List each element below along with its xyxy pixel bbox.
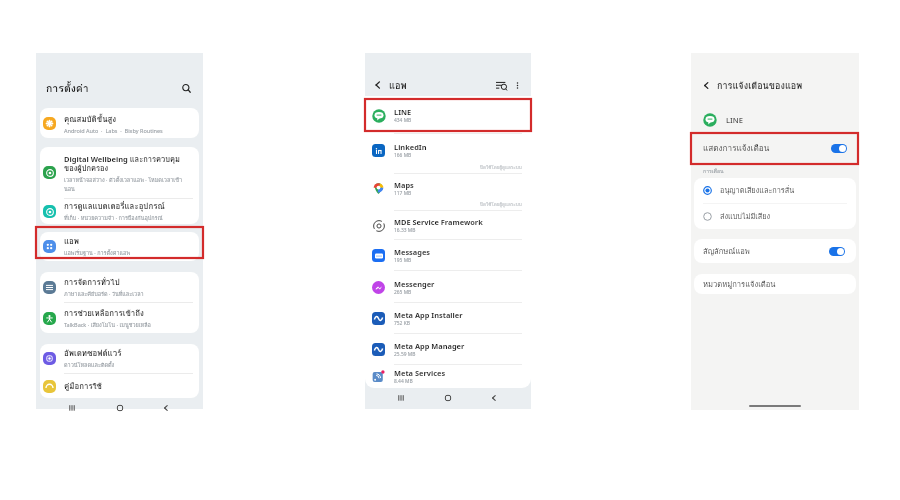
staticText: Digital Wellbeing และการควบคุมของผู้ปกคร…	[64, 153, 192, 175]
button[interactable]: Back	[701, 80, 712, 91]
staticText: LINE	[726, 115, 743, 125]
staticText: Android Auto · Labs · Bixby Routines	[64, 127, 163, 134]
staticText: 117 MB	[394, 190, 412, 197]
staticText: Meta App Manager	[394, 341, 465, 351]
staticText: Maps	[394, 180, 414, 190]
staticText: การจัดการทั่วไป	[64, 276, 120, 289]
staticText: คุณสมบัติขั้นสูง	[64, 113, 117, 126]
button[interactable]: หมวดหมู่การแจ้งเตือน	[694, 274, 856, 294]
button[interactable]: Back	[161, 403, 171, 413]
staticText: 8.44 MB	[394, 378, 413, 385]
staticText: ปิดใช้โดยผู้ดูแลระบบ	[480, 164, 522, 171]
button[interactable]: การจัดการทั่วไป	[40, 272, 199, 302]
staticText: 25.59 MB	[394, 351, 416, 358]
staticText: 16.33 MB	[394, 227, 416, 234]
staticText: แอพ	[389, 78, 407, 93]
button[interactable]: คู่มือการใช้	[40, 374, 199, 398]
staticText: การช่วยเหลือการเข้าถึง	[64, 307, 144, 320]
staticText: 166 MB	[394, 152, 412, 159]
button[interactable]: Meta App Installer	[365, 303, 531, 334]
staticText: สัญลักษณ์แอพ	[703, 245, 750, 257]
staticText: ดาวน์โหลดและติดตั้ง	[64, 361, 115, 370]
staticText: LinkedIn	[394, 142, 427, 152]
button[interactable]: การช่วยเหลือการเข้าถึง	[40, 303, 199, 333]
button[interactable]: Meta App Manager	[365, 334, 531, 365]
button[interactable]: Messages	[365, 240, 531, 271]
button[interactable]: Home	[115, 403, 125, 413]
button[interactable]: LinkedIn	[365, 134, 531, 174]
staticText: Messenger	[394, 279, 435, 289]
button[interactable]: Back	[372, 79, 384, 91]
staticText: Meta Services	[394, 368, 446, 378]
button[interactable]: Recents	[396, 393, 406, 403]
staticText: MDE Service Framework	[394, 217, 483, 227]
staticText: แอพ	[64, 235, 80, 248]
button[interactable]: Meta Services	[365, 365, 531, 388]
staticText: ส่งแบบไม่มีเสียง	[720, 211, 771, 223]
button[interactable]: Maps	[365, 174, 531, 211]
staticText: TalkBack · เสียงโมโน · เมนูช่วยเหลือ	[64, 321, 151, 330]
staticText: แอพเริ่มฐาน · การตั้งค่าแอพ	[64, 249, 131, 258]
button[interactable]: อัพเดทซอฟต์แวร์	[40, 344, 199, 373]
button[interactable]: คุณสมบัติขั้นสูง	[40, 108, 199, 138]
staticText: อัพเดทซอฟต์แวร์	[64, 347, 122, 360]
staticText: การเตือน	[703, 167, 724, 175]
staticText: 265 MB	[394, 289, 412, 296]
staticText: 752 KB	[394, 320, 410, 327]
button[interactable]: LINE	[365, 96, 531, 134]
button[interactable]: Back	[489, 393, 499, 403]
button[interactable]: Search	[181, 83, 192, 94]
button[interactable]: More options	[513, 81, 522, 90]
button[interactable]: Toggle on	[831, 144, 847, 153]
button[interactable]: Messenger	[365, 271, 531, 303]
staticText: เวลาหน้าจอสว่าง · ตัวตั้งเวลาแอพ · โหมดเ…	[64, 176, 192, 193]
button[interactable]: ส่งแบบไม่มีเสียง	[694, 204, 856, 229]
staticText: อนุญาตเสียงและการสั่น	[720, 185, 795, 197]
staticText: ปิดใช้โดยผู้ดูแลระบบ	[480, 201, 522, 208]
button[interactable]: การดูแลแบตเตอรี่และอุปกรณ์	[40, 199, 199, 224]
staticText: การแจ้งเตือนของแอพ	[717, 79, 803, 93]
button[interactable]: Toggle on	[829, 247, 845, 256]
staticText: Messages	[394, 247, 431, 257]
button[interactable]: Home	[443, 393, 453, 403]
staticText: คู่มือการใช้	[64, 380, 102, 393]
button[interactable]: LINE	[691, 111, 859, 129]
button[interactable]: Recents	[67, 403, 77, 413]
button[interactable]: MDE Service Framework	[365, 211, 531, 240]
staticText: ภาษาและคีย์บอร์ด · วันที่และเวลา	[64, 290, 144, 299]
staticText: แสดงการแจ้งเตือน	[703, 142, 770, 155]
button[interactable]: อนุญาตเสียงและการสั่น	[694, 178, 856, 203]
staticText: การตั้งค่า	[46, 80, 89, 97]
staticText: LINE	[394, 107, 412, 117]
staticText: หมวดหมู่การแจ้งเตือน	[703, 278, 776, 290]
staticText: Meta App Installer	[394, 310, 463, 320]
button[interactable]: Digital Wellbeing และการควบคุมของผู้ปกคร…	[40, 147, 199, 198]
staticText: การดูแลแบตเตอรี่และอุปกรณ์	[64, 200, 165, 213]
staticText: 195 MB	[394, 257, 412, 264]
staticText: ที่เก็บ · หน่วยความจำ · การป้องกันอุปกรณ…	[64, 214, 163, 223]
button[interactable]: แอพ	[40, 232, 199, 261]
button[interactable]: สัญลักษณ์แอพ	[694, 239, 856, 263]
button[interactable]: แสดงการแจ้งเตือน	[691, 135, 859, 162]
staticText: 434 MB	[394, 117, 412, 124]
button[interactable]: Sort and search	[496, 80, 507, 91]
